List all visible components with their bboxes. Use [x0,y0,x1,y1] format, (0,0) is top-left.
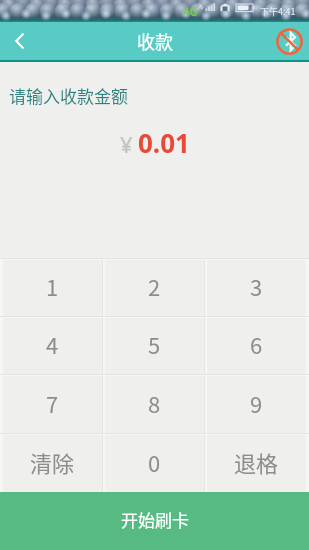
button[interactable]: Back [0,22,36,62]
staticText: 4 [46,328,59,360]
button[interactable]: 1 [3,260,102,316]
staticText: 下午4:41 [260,5,296,18]
staticText: 8 [148,387,161,419]
staticText: 2 [148,270,161,302]
button[interactable]: 3 [207,260,306,316]
button[interactable]: 4 [3,318,102,374]
staticText: 4G [183,3,198,19]
staticText: 6 [250,328,263,360]
staticText: 3 [250,270,263,302]
staticText: 0.01 [138,125,190,160]
button[interactable]: 5 [105,318,204,374]
staticText: 5 [148,328,161,360]
staticText: 7 [46,387,59,419]
button[interactable]: 清除 [3,435,102,492]
staticText: 开始刷卡 [121,507,189,532]
staticText: 收款 [137,28,173,54]
button[interactable]: 2 [105,260,204,316]
button[interactable]: 7 [3,376,102,433]
button[interactable]: 开始刷卡 [0,492,309,550]
staticText: 0 [148,446,161,478]
button[interactable]: Bluetooth disabled [274,26,304,56]
button[interactable]: 9 [207,376,306,433]
staticText: 退格 [234,446,279,478]
staticText: 请输入收款金额 [9,83,128,108]
staticText: 1 [46,270,59,302]
button[interactable]: 6 [207,318,306,374]
button[interactable]: 退格 [207,435,306,492]
staticText: 清除 [30,446,75,478]
button[interactable]: 8 [105,376,204,433]
staticText: ¥ [120,129,133,159]
staticText: 9 [250,387,263,419]
button[interactable]: 0 [105,435,204,492]
